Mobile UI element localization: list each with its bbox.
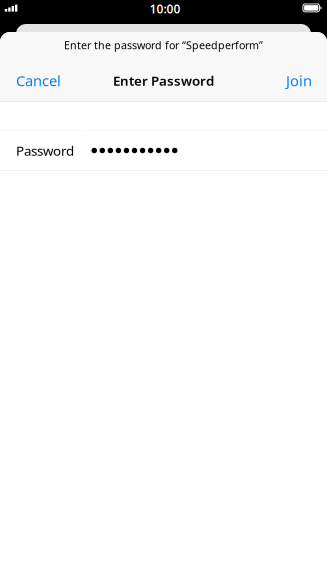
staticText: Join [286,71,312,90]
staticText: Cancel [16,71,61,90]
button[interactable]: Cancel [0,61,77,102]
button[interactable]: Join [270,61,327,102]
staticText: Enter Password [113,72,214,89]
staticText: Password [16,142,74,159]
button[interactable]: Password [0,130,327,170]
staticText: 10:00 [149,1,180,17]
staticText: Enter the password for “Speedperform” [64,38,263,52]
